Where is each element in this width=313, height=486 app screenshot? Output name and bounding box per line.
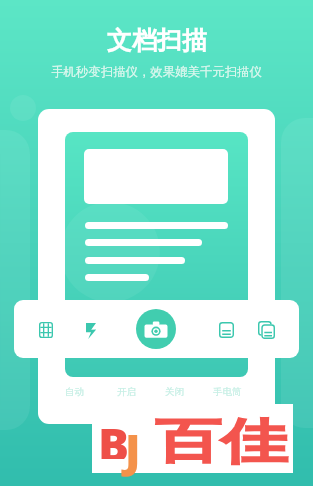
button[interactable]: Camera shutter: [136, 309, 176, 349]
button[interactable]: 手电筒: [212, 386, 243, 398]
staticText: 百佳: [155, 412, 287, 472]
button[interactable]: 关闭: [164, 386, 185, 398]
staticText: 手电筒: [213, 386, 242, 398]
staticText: 自动: [65, 386, 84, 398]
staticText: 开启: [117, 386, 136, 398]
staticText: B: [98, 413, 130, 459]
staticText: 手机秒变扫描仪，效果媲美千元扫描仪: [51, 64, 262, 80]
button[interactable]: Grid: [39, 322, 53, 338]
staticText: 文档扫描: [107, 25, 207, 56]
staticText: 关闭: [165, 386, 184, 398]
button[interactable]: Multiple documents: [258, 321, 275, 339]
button[interactable]: 自动: [64, 386, 85, 398]
button[interactable]: Single document: [219, 322, 234, 338]
button[interactable]: Flash: [86, 323, 96, 339]
button[interactable]: 开启: [116, 386, 137, 398]
staticText: J: [125, 420, 141, 480]
